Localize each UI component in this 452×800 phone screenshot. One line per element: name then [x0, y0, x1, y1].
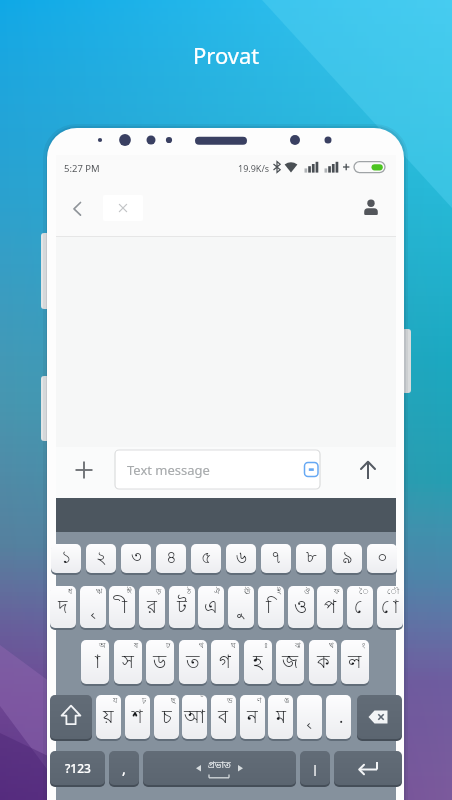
- staticText: Text message: [127, 461, 210, 479]
- staticText: ঙ: [284, 696, 290, 707]
- button[interactable]: প: [317, 586, 343, 628]
- staticText: ণ: [257, 696, 262, 707]
- staticText: ল: [348, 650, 362, 675]
- staticText: ঔ: [304, 587, 311, 598]
- button[interactable]: ১: [51, 544, 81, 573]
- staticText: |: [312, 761, 319, 776]
- button[interactable]: ৭: [261, 544, 291, 573]
- staticText: ব: [218, 705, 229, 730]
- button[interactable]: .: [326, 695, 351, 739]
- button[interactable]: Text message: [115, 450, 320, 489]
- staticText: ৬: [236, 547, 247, 570]
- staticText: ?123: [65, 760, 91, 776]
- button[interactable]: ল: [341, 640, 369, 684]
- button[interactable]: ৬: [226, 544, 256, 573]
- button[interactable]: ব: [211, 695, 236, 739]
- staticText: Provat: [193, 40, 260, 70]
- staticText: ঐ: [214, 587, 221, 598]
- button[interactable]: গ: [211, 640, 239, 684]
- staticText: ড: [153, 650, 167, 675]
- button[interactable]: র: [139, 586, 165, 628]
- button[interactable]: ট: [169, 586, 195, 628]
- button[interactable]: ?123: [50, 751, 105, 785]
- staticText: থ: [199, 641, 204, 652]
- staticText: ড়: [156, 587, 162, 598]
- button[interactable]: |: [300, 751, 330, 785]
- button[interactable]: ৫: [191, 544, 221, 573]
- staticText: ঊ: [244, 587, 251, 598]
- button[interactable]: এ: [198, 586, 224, 628]
- button[interactable]: ড: [146, 640, 174, 684]
- button[interactable]: চ: [154, 695, 179, 739]
- staticText: ে: [354, 595, 367, 620]
- staticText: ২: [96, 547, 107, 570]
- button[interactable]: আ: [182, 695, 207, 739]
- button[interactable]: [50, 695, 92, 739]
- staticText: .: [333, 705, 345, 730]
- staticText: ৫: [201, 547, 212, 570]
- button[interactable]: [103, 195, 143, 221]
- button[interactable]: ,: [109, 751, 139, 785]
- button[interactable]: ক: [309, 640, 337, 684]
- staticText: ষ: [134, 641, 139, 652]
- staticText: ৈ: [359, 587, 370, 598]
- staticText: ৃ: [307, 705, 312, 730]
- button[interactable]: ন: [240, 695, 265, 739]
- button[interactable]: [358, 194, 386, 222]
- staticText: ো: [381, 595, 399, 620]
- button[interactable]: শ: [125, 695, 150, 739]
- staticText: ত: [186, 650, 200, 675]
- staticText: ছ: [171, 696, 176, 707]
- staticText: ু: [239, 595, 244, 620]
- button[interactable]: ০: [367, 544, 397, 573]
- staticText: শ: [132, 705, 143, 730]
- staticText: ধ: [68, 587, 73, 598]
- staticText: চ: [162, 705, 172, 730]
- staticText: ৮: [306, 547, 317, 570]
- button[interactable]: ও: [288, 586, 314, 628]
- button[interactable]: [334, 751, 402, 785]
- staticText: র: [147, 595, 157, 620]
- button[interactable]: ৪: [156, 544, 186, 573]
- button[interactable]: ৃ: [80, 586, 106, 628]
- button[interactable]: প্রভাত: [143, 751, 296, 785]
- staticText: ঋ: [96, 587, 103, 598]
- button[interactable]: ত: [179, 640, 207, 684]
- staticText: ০: [377, 547, 388, 570]
- staticText: ং: [360, 641, 366, 652]
- button[interactable]: জ: [276, 640, 304, 684]
- staticText: ৭: [271, 547, 282, 570]
- staticText: এ: [204, 595, 218, 620]
- button[interactable]: হ: [244, 640, 272, 684]
- button[interactable]: ু: [228, 586, 254, 628]
- staticText: ি: [266, 595, 277, 620]
- button[interactable]: ম: [268, 695, 293, 739]
- staticText: ৪: [166, 547, 177, 570]
- staticText: খ: [329, 641, 334, 652]
- button[interactable]: ৃ: [297, 695, 322, 739]
- button[interactable]: ি: [258, 586, 284, 628]
- button[interactable]: ৯: [332, 544, 362, 573]
- staticText: দ: [58, 595, 68, 620]
- button[interactable]: ো: [377, 586, 403, 628]
- button[interactable]: স: [114, 640, 142, 684]
- button[interactable]: ৮: [296, 544, 326, 573]
- button[interactable]: া: [81, 640, 109, 684]
- button[interactable]: ৩: [121, 544, 151, 573]
- staticText: ঢ: [166, 641, 171, 652]
- button[interactable]: ে: [347, 586, 373, 628]
- button[interactable]: [64, 196, 92, 222]
- staticText: ,: [122, 759, 126, 778]
- staticText: ঃ: [262, 641, 269, 652]
- staticText: প্রভাত: [208, 759, 231, 772]
- button[interactable]: দ: [50, 586, 76, 628]
- staticText: ন: [247, 705, 258, 730]
- staticText: ভ: [227, 696, 233, 707]
- staticText: জ: [282, 650, 299, 675]
- button[interactable]: য়: [96, 695, 121, 739]
- button[interactable]: [357, 695, 402, 739]
- staticText: ক: [317, 650, 330, 675]
- button[interactable]: ী: [109, 586, 135, 628]
- staticText: য়: [103, 705, 114, 730]
- button[interactable]: ২: [86, 544, 116, 573]
